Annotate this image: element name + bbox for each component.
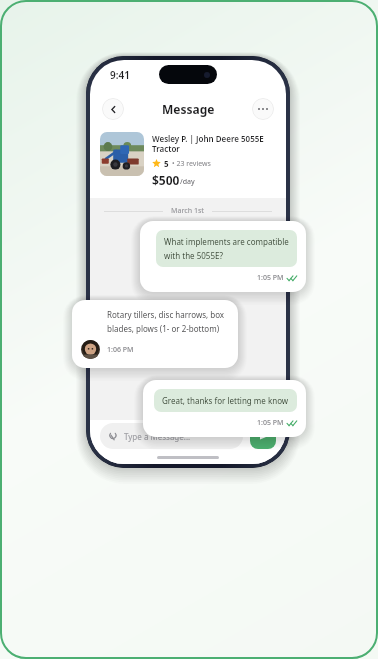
- button[interactable]: What implements are compatible: [140, 221, 306, 292]
- staticText: 5: [164, 158, 169, 169]
- staticText: Rotary tillers, disc harrows, box: [107, 309, 225, 320]
- button[interactable]: More options: [252, 98, 274, 120]
- button[interactable]: Great, thanks for letting me know: [143, 380, 306, 437]
- staticText: 1:05 PM: [257, 273, 284, 283]
- button[interactable]: Wesley P. | John Deere 5055E Tractor: [100, 128, 276, 192]
- staticText: with the 5055E?: [164, 250, 223, 261]
- button[interactable]: Rotary tillers, disc harrows, box: [72, 300, 238, 368]
- button[interactable]: Attach: [100, 423, 243, 449]
- staticText: 9:41: [110, 68, 130, 82]
- staticText: What implements are compatible: [164, 236, 289, 247]
- staticText: blades, plows (1- or 2-bottom): [107, 323, 220, 334]
- staticText: Wesley P. | John Deere 5055E Tractor: [152, 133, 276, 154]
- staticText: 1:06 PM: [107, 345, 134, 355]
- staticText: /day: [180, 177, 195, 187]
- button[interactable]: Back: [102, 98, 124, 120]
- staticText: Great, thanks for letting me know: [162, 395, 289, 406]
- staticText: Type a Message...: [124, 431, 191, 442]
- staticText: $500: [152, 172, 180, 188]
- button[interactable]: Send: [250, 423, 276, 449]
- staticText: • 23 reviews: [172, 159, 211, 169]
- other: Attach: [108, 431, 118, 441]
- staticText: 1:05 PM: [257, 418, 284, 428]
- staticText: March 1st: [171, 206, 204, 216]
- staticText: Message: [162, 101, 215, 117]
